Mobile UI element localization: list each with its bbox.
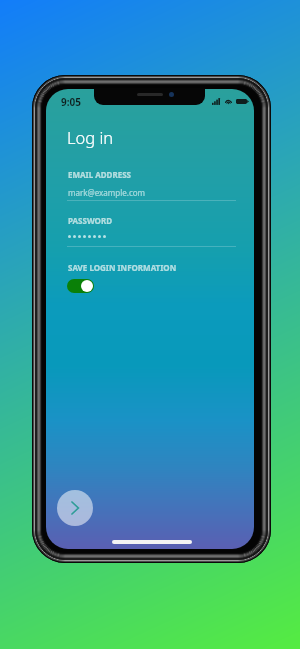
staticText: Log in: [67, 126, 114, 148]
staticText: EMAIL ADDRESS: [68, 169, 132, 180]
staticText: mark@example.com: [68, 187, 146, 198]
button[interactable]: Save login information: [67, 279, 94, 293]
staticText: 9:05: [61, 95, 81, 109]
staticText: PASSWORD: [68, 215, 113, 226]
button[interactable]: Next: [57, 490, 93, 526]
staticText: SAVE LOGIN INFORMATION: [68, 262, 177, 273]
